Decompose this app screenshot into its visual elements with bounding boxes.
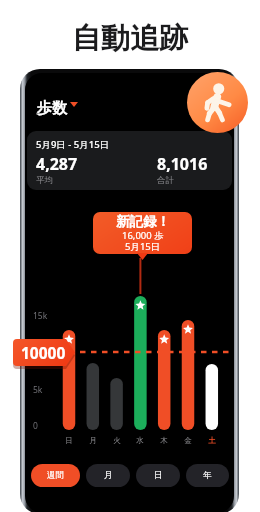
staticText: 歩数 (37, 99, 67, 118)
staticText: 平均 (36, 175, 53, 186)
staticText: 合計 (157, 175, 174, 186)
staticText: 4,287 (36, 153, 78, 175)
staticText: 土 (208, 436, 216, 445)
staticText: 自動追跡 (72, 20, 188, 57)
staticText: 10000 (21, 342, 66, 363)
button[interactable]: 新記録！ (93, 212, 192, 254)
button[interactable]: 月 (86, 464, 130, 487)
staticText: 8,1016 (157, 153, 208, 175)
staticText: 週間 (47, 470, 64, 481)
staticText: 5月15日 (125, 240, 161, 251)
button[interactable]: 10000 (13, 339, 75, 366)
button[interactable]: 歩数 (37, 99, 78, 118)
staticText: 5月9日 - 5月15日 (36, 138, 110, 151)
staticText: 5k (33, 384, 43, 396)
staticText: 火 (113, 436, 121, 445)
staticText: 16,000 歩 (122, 229, 164, 240)
button[interactable]: 5月9日 - 5月15日 (27, 131, 232, 190)
staticText: 金 (184, 436, 192, 445)
button[interactable]: Walking activity (187, 72, 248, 133)
button[interactable]: 年 (186, 464, 229, 487)
staticText: 日 (154, 470, 163, 481)
staticText: 月 (104, 470, 113, 481)
staticText: 木 (160, 436, 168, 445)
staticText: 水 (136, 436, 144, 445)
staticText: 日 (65, 436, 73, 445)
staticText: 月 (89, 436, 97, 445)
staticText: 年 (203, 470, 212, 481)
button[interactable]: 週間 (31, 464, 80, 487)
staticText: 新記録！ (116, 213, 170, 229)
staticText: 0 (33, 420, 38, 432)
staticText: 15k (33, 310, 48, 322)
button[interactable]: 日 (136, 464, 180, 487)
